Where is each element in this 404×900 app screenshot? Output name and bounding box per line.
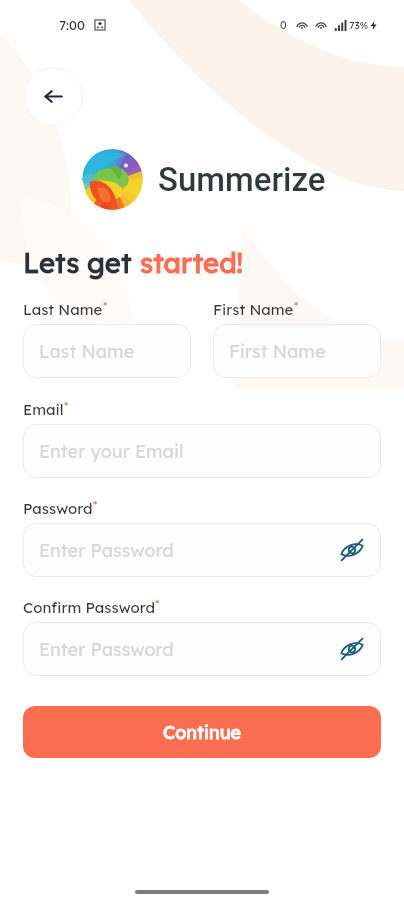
staticText: Email [23, 400, 64, 419]
button[interactable]: Enter Password [23, 523, 381, 577]
button[interactable]: Last Name [23, 324, 191, 378]
staticText: First Name [229, 340, 326, 363]
button[interactable]: Show password [338, 635, 366, 663]
staticText: Summerize [158, 160, 326, 199]
staticText: 7:00 [59, 17, 85, 33]
button[interactable]: Show password [338, 536, 366, 564]
staticText: 73% [349, 19, 369, 32]
staticText: Enter your Email [39, 440, 184, 463]
staticText: * [155, 597, 160, 611]
staticText: Continue [163, 721, 242, 744]
staticText: Confirm Password [23, 598, 155, 617]
staticText: started! [140, 245, 244, 279]
button[interactable]: Enter Password [23, 622, 381, 676]
staticText: * [294, 299, 299, 313]
staticText: Enter Password [39, 539, 174, 562]
staticText: * [64, 399, 69, 413]
staticText: * [93, 498, 98, 512]
button[interactable]: First Name [213, 324, 381, 378]
staticText: Enter Password [39, 638, 174, 661]
button[interactable]: Continue [23, 706, 381, 758]
staticText: * [103, 299, 108, 313]
staticText: Last Name [39, 340, 135, 363]
staticText: Last Name [23, 300, 103, 319]
button[interactable]: Enter your Email [23, 424, 381, 478]
staticText: Lets get [23, 245, 140, 279]
staticText: 0 [280, 18, 287, 32]
staticText: First Name [213, 300, 294, 319]
button[interactable]: Back [24, 67, 83, 126]
staticText: Password [23, 499, 93, 518]
